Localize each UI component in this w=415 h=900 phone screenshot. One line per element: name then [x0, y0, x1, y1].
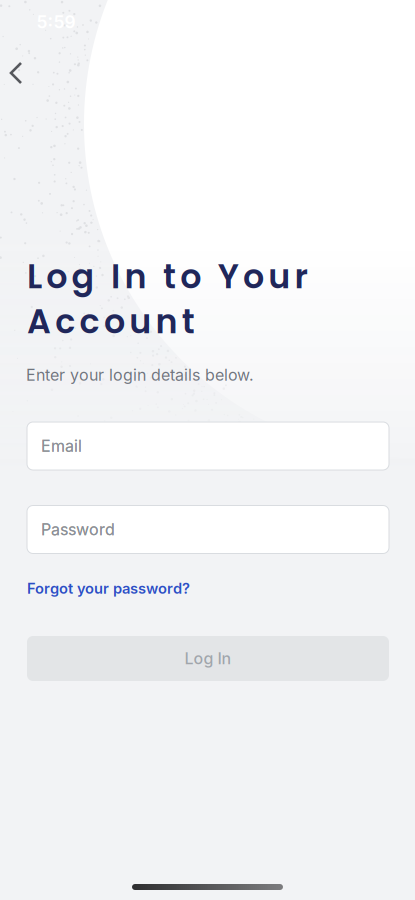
- staticText: Password: [41, 520, 115, 539]
- staticText: L: [27, 253, 42, 300]
- staticText: g: [72, 253, 95, 300]
- staticText: o: [104, 298, 125, 345]
- button[interactable]: Log In: [27, 636, 389, 681]
- textField[interactable]: Password: [41, 520, 389, 539]
- staticText: Password: [41, 520, 115, 539]
- button[interactable]: Back: [0, 51, 38, 95]
- staticText: I: [111, 253, 120, 300]
- staticText: u: [129, 298, 151, 345]
- staticText: n: [124, 253, 146, 300]
- staticText: A: [27, 298, 51, 345]
- staticText: Email: [41, 436, 82, 456]
- staticText: o: [243, 253, 264, 300]
- staticText: t: [182, 298, 195, 345]
- staticText: Enter your login details below.: [26, 365, 254, 385]
- staticText: c: [55, 298, 75, 345]
- staticText: Email: [41, 436, 82, 456]
- textField[interactable]: Email: [41, 436, 389, 456]
- staticText: n: [155, 298, 177, 345]
- staticText: r: [295, 253, 308, 300]
- staticText: o: [180, 253, 201, 300]
- staticText: o: [46, 253, 67, 300]
- staticText: 5:59: [36, 11, 75, 32]
- staticText: t: [163, 253, 176, 300]
- staticText: Log In: [184, 649, 231, 668]
- staticText: Y: [218, 253, 239, 300]
- staticText: u: [268, 253, 290, 300]
- button[interactable]: Forgot your password?: [27, 580, 190, 597]
- staticText: c: [80, 298, 100, 345]
- staticText: Forgot your password?: [27, 580, 190, 597]
